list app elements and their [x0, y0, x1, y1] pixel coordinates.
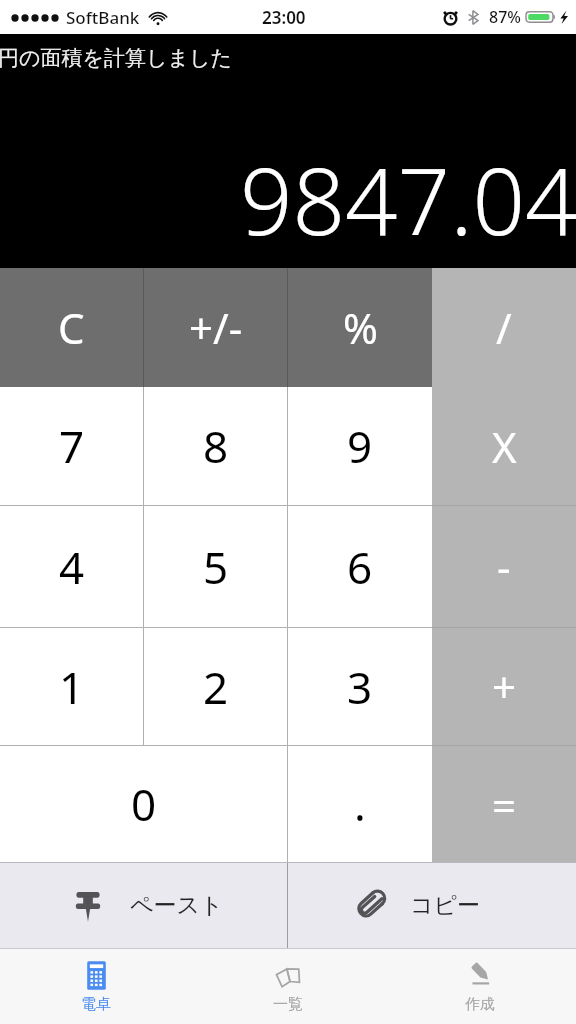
button[interactable]: Paste — [0, 863, 287, 948]
button[interactable]: / — [432, 268, 576, 387]
staticText: = — [492, 776, 517, 833]
button[interactable]: 作成 — [384, 949, 576, 1024]
button[interactable]: 9 — [288, 387, 432, 505]
staticText: コピー — [410, 891, 481, 920]
staticText: 4 — [59, 537, 85, 597]
staticText: ペースト — [130, 891, 224, 920]
button[interactable]: 6 — [288, 506, 432, 627]
button[interactable]: 2 — [144, 628, 287, 745]
button[interactable]: 4 — [0, 506, 143, 627]
button[interactable]: Copy — [288, 863, 576, 948]
staticText: % — [343, 299, 378, 356]
button[interactable]: 1 — [0, 628, 143, 745]
staticText: 2 — [203, 657, 229, 717]
staticText: + — [492, 658, 517, 715]
staticText: +/- — [189, 299, 243, 356]
button[interactable]: +/- — [144, 268, 287, 387]
button[interactable]: + — [432, 628, 576, 745]
staticText: 87% — [489, 6, 521, 28]
staticText: 23:00 — [262, 6, 306, 29]
staticText: . — [354, 774, 366, 834]
button[interactable]: % — [288, 268, 432, 387]
staticText: 0 — [131, 774, 157, 834]
button[interactable]: . — [288, 746, 432, 862]
button[interactable]: C — [0, 268, 143, 387]
button[interactable]: 一覧 — [192, 949, 384, 1024]
button[interactable]: 5 — [144, 506, 287, 627]
button[interactable]: 7 — [0, 387, 143, 505]
button[interactable]: 電卓 — [0, 949, 192, 1024]
staticText: 作成 — [465, 995, 495, 1014]
staticText: 8 — [203, 416, 229, 476]
staticText: 5 — [203, 537, 229, 597]
staticText: SoftBank — [66, 6, 140, 29]
staticText: C — [58, 299, 85, 356]
staticText: 1 — [59, 657, 85, 717]
staticText: X — [492, 418, 517, 475]
staticText: 一覧 — [273, 995, 303, 1014]
button[interactable]: - — [432, 506, 576, 627]
staticText: 9 — [347, 416, 373, 476]
staticText: 円の面積を計算しました — [0, 45, 232, 71]
button[interactable]: 3 — [288, 628, 432, 745]
other: Paste — [72, 890, 104, 922]
staticText: 6 — [347, 537, 373, 597]
other: Copy — [350, 887, 388, 925]
button[interactable]: = — [432, 746, 576, 862]
staticText: / — [496, 299, 512, 356]
staticText: 9847.04 — [240, 137, 576, 262]
button[interactable]: 8 — [144, 387, 287, 505]
staticText: 3 — [347, 657, 373, 717]
staticText: 7 — [59, 416, 85, 476]
staticText: - — [497, 538, 511, 595]
button[interactable]: X — [432, 387, 576, 505]
staticText: 電卓 — [81, 995, 111, 1014]
button[interactable]: 0 — [0, 746, 287, 862]
